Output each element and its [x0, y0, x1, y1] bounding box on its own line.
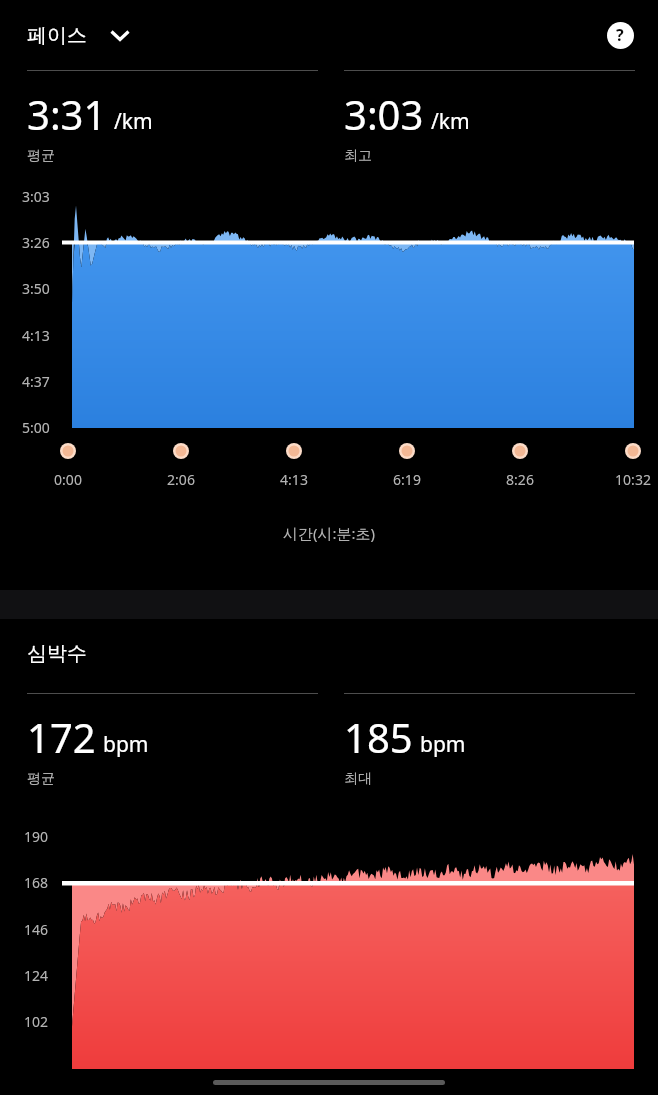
staticText: 146 [24, 920, 49, 939]
staticText: 3:31 [27, 87, 107, 141]
staticText: 4:13 [22, 326, 50, 345]
staticText: 4:13 [259, 470, 329, 489]
staticText: 3:50 [22, 279, 50, 298]
staticText: 10:32 [598, 470, 658, 489]
staticText: 168 [24, 873, 49, 892]
staticText: 최고 [344, 147, 372, 165]
button[interactable]: Help [605, 20, 635, 50]
staticText: 102 [24, 1012, 49, 1031]
staticText: 3:03 [22, 187, 50, 206]
staticText: 페이스 [27, 23, 87, 48]
staticText: 시간(시:분:초) [283, 523, 376, 543]
staticText: bpm [103, 730, 149, 759]
staticText: 8:26 [485, 470, 555, 489]
staticText: bpm [420, 730, 466, 759]
staticText: 3:03 [344, 87, 424, 141]
staticText: 124 [24, 966, 49, 985]
staticText: 평균 [27, 770, 55, 788]
staticText: 4:37 [22, 372, 50, 391]
staticText: 2:06 [146, 470, 216, 489]
staticText: 3:26 [22, 233, 50, 252]
button[interactable]: 심박수 [27, 641, 87, 666]
staticText: 172 [27, 710, 96, 764]
staticText: 6:19 [372, 470, 442, 489]
staticText: ? [616, 24, 624, 46]
staticText: /km [431, 107, 470, 136]
staticText: 190 [24, 827, 49, 846]
staticText: /km [114, 107, 153, 136]
staticText: 5:00 [22, 418, 50, 437]
staticText: 185 [344, 710, 413, 764]
button[interactable]: 페이스 [27, 22, 133, 48]
staticText: 최대 [344, 770, 372, 788]
staticText: 평균 [27, 147, 55, 165]
staticText: 0:00 [33, 470, 103, 489]
